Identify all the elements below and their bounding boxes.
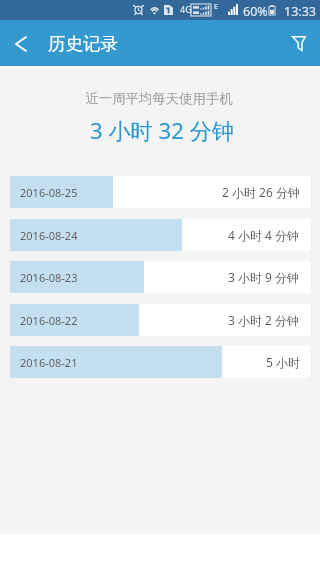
- staticText: 60%: [243, 3, 268, 20]
- staticText: 2016-08-25: [20, 185, 78, 200]
- staticText: 2 小时 26 分钟: [222, 184, 300, 200]
- staticText: 3 小时 9 分钟: [228, 269, 300, 285]
- staticText: E: [214, 2, 218, 12]
- staticText: 13:33: [284, 3, 316, 20]
- button[interactable]: Filter: [275, 21, 320, 66]
- staticText: 4G: [180, 3, 192, 15]
- button[interactable]: 2016-08-23: [10, 261, 310, 293]
- staticText: 2016-08-23: [20, 270, 78, 285]
- button[interactable]: 2016-08-22: [10, 304, 310, 336]
- staticText: 2016-08-22: [20, 313, 78, 328]
- button[interactable]: 2016-08-21: [10, 346, 310, 378]
- staticText: 3 小时 32 分钟: [2, 115, 320, 145]
- staticText: 5 小时: [266, 354, 300, 370]
- button[interactable]: 2016-08-24: [10, 219, 310, 251]
- staticText: 2016-08-21: [20, 355, 78, 370]
- button[interactable]: Back: [0, 22, 42, 64]
- staticText: 2016-08-24: [20, 228, 78, 243]
- staticText: 近一周平均每天使用手机: [0, 90, 319, 107]
- staticText: 4 小时 4 分钟: [228, 227, 300, 243]
- staticText: 历史记录: [48, 33, 118, 55]
- staticText: 3 小时 2 分钟: [228, 312, 300, 328]
- button[interactable]: 2016-08-25: [10, 176, 310, 208]
